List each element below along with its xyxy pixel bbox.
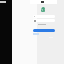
button[interactable] (33, 29, 55, 32)
button[interactable] (33, 19, 55, 22)
button[interactable] (30, 0, 57, 4)
button[interactable] (33, 15, 55, 18)
